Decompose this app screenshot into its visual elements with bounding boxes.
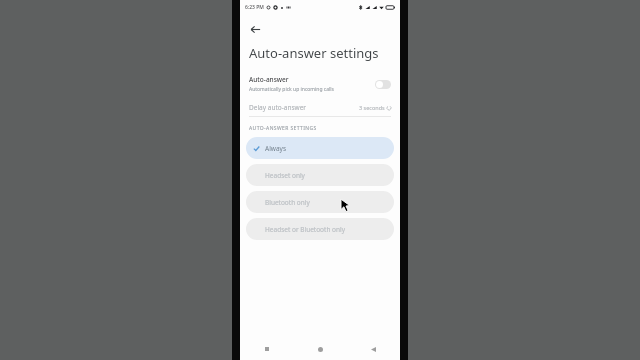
staticText: Automatically pick up incoming calls	[249, 86, 334, 93]
button[interactable]: Back	[347, 338, 400, 360]
staticText: Delay auto-answer	[249, 103, 359, 112]
button[interactable]: Always	[246, 137, 394, 159]
staticText: Headset or Bluetooth only	[265, 225, 346, 234]
button[interactable]: Bluetooth only	[246, 191, 394, 213]
button[interactable]: Home	[294, 338, 347, 360]
staticText: Auto-answer settings	[249, 44, 379, 62]
button[interactable]: Headset or Bluetooth only	[246, 218, 394, 240]
staticText: Bluetooth only	[265, 198, 310, 207]
staticText: Headset only	[265, 171, 305, 180]
button[interactable]: Auto-answer	[240, 75, 400, 93]
staticText: AUTO-ANSWER SETTINGS	[249, 125, 317, 132]
button[interactable]: Delay auto-answer	[240, 101, 400, 114]
staticText: Always	[265, 144, 287, 153]
button[interactable]: Headset only	[246, 164, 394, 186]
staticText: 3 seconds	[359, 104, 385, 111]
staticText: Auto-answer	[249, 75, 289, 84]
button[interactable]: Back	[244, 18, 266, 40]
staticText: 6:23 PM	[245, 4, 264, 11]
button[interactable]: Recents	[240, 338, 294, 360]
